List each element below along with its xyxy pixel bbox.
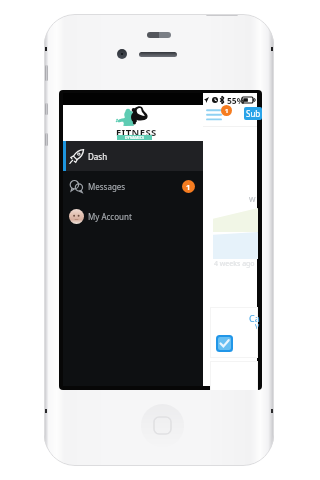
button[interactable]: Home button bbox=[141, 404, 184, 447]
staticText: My Account bbox=[88, 211, 132, 222]
staticText: DYNAMICS bbox=[125, 135, 144, 140]
staticText: Ca bbox=[249, 312, 260, 324]
button[interactable]: Open navigation menu bbox=[207, 109, 221, 121]
button[interactable]: Sub bbox=[244, 107, 262, 120]
staticText: FITNESS bbox=[116, 126, 157, 139]
staticText: 55% bbox=[227, 95, 245, 107]
staticText: Dash bbox=[88, 151, 108, 162]
button[interactable]: My Account bbox=[63, 201, 203, 231]
button[interactable]: Dash bbox=[63, 141, 203, 171]
staticText: V bbox=[255, 322, 260, 332]
staticText: 1 bbox=[225, 107, 229, 115]
button[interactable]: Messages bbox=[63, 171, 203, 201]
staticText: 1 bbox=[186, 182, 191, 192]
staticText: Sub bbox=[246, 108, 261, 119]
button[interactable]: Silent switch bbox=[45, 65, 48, 81]
staticText: W bbox=[249, 195, 256, 205]
staticText: 4 weeks ago bbox=[214, 259, 255, 269]
button[interactable]: Volume up bbox=[45, 103, 48, 115]
staticText: Messages bbox=[88, 181, 126, 192]
button[interactable]: Volume down bbox=[45, 133, 48, 146]
button[interactable]: Power button bbox=[206, 14, 238, 16]
button[interactable]: Completed checkbox bbox=[218, 337, 231, 350]
